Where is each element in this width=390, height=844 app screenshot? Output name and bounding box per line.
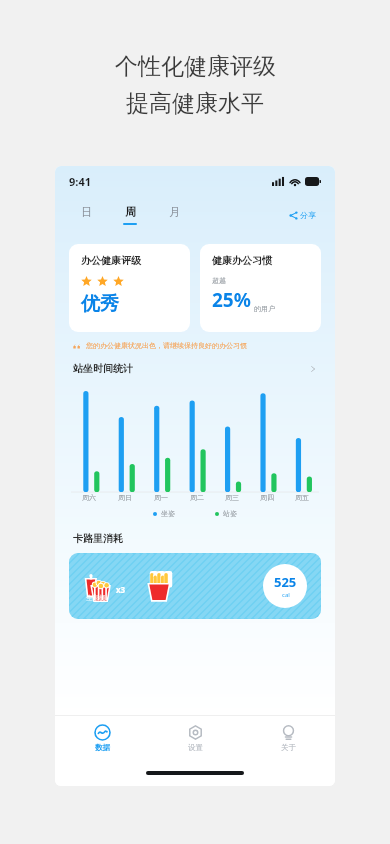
staticText: 设置 [188, 743, 203, 752]
staticText: 站姿 [223, 509, 237, 518]
staticText: 周 [125, 205, 136, 219]
staticText: 周三 [225, 493, 239, 502]
button[interactable]: 设置 [149, 716, 242, 760]
button[interactable]: 办公健康评级 [69, 244, 190, 332]
staticText: 周一 [154, 493, 168, 502]
staticText: 坐姿 [161, 509, 175, 518]
button[interactable]: 健康办公习惯 [200, 244, 321, 332]
staticText: 日 [81, 205, 92, 219]
button[interactable]: 关于 [242, 716, 335, 760]
staticText: 周日 [118, 493, 132, 502]
button[interactable]: 分享 [286, 207, 319, 223]
staticText: 超越 [212, 276, 226, 285]
staticText: cal [282, 591, 290, 599]
staticText: 提高健康水平 [126, 89, 264, 118]
button[interactable]: x3 [69, 553, 321, 619]
staticText: 周四 [260, 493, 274, 502]
staticText: 优秀 [81, 292, 119, 316]
staticText: 周六 [82, 493, 96, 502]
staticText: x3 [116, 584, 126, 595]
staticText: 站坐时间统计 [73, 362, 133, 375]
button[interactable]: 数据 [55, 716, 149, 760]
staticText: 全家桶 [86, 594, 106, 602]
staticText: 9:41 [69, 174, 91, 189]
staticText: 月 [169, 205, 180, 219]
staticText: 的用户 [254, 304, 275, 313]
staticText: 周二 [190, 493, 204, 502]
staticText: 个性化健康评级 [115, 52, 276, 81]
button[interactable]: 日 [75, 203, 97, 227]
button[interactable]: 周 [119, 203, 141, 227]
staticText: 525 [274, 573, 297, 591]
staticText: 健康办公习惯 [212, 254, 272, 267]
staticText: 25% [212, 287, 251, 313]
staticText: 周五 [295, 493, 309, 502]
button[interactable]: 月 [163, 203, 185, 227]
staticText: 卡路里消耗 [73, 532, 123, 545]
staticText: 办公健康评级 [81, 254, 141, 267]
staticText: 数据 [95, 743, 110, 752]
staticText: 关于 [281, 743, 296, 752]
button[interactable]: 站坐时间统计 [55, 362, 335, 375]
staticText: 您的办公健康状况出色，请继续保持良好的办公习惯 [86, 341, 247, 350]
staticText: 分享 [300, 210, 316, 220]
